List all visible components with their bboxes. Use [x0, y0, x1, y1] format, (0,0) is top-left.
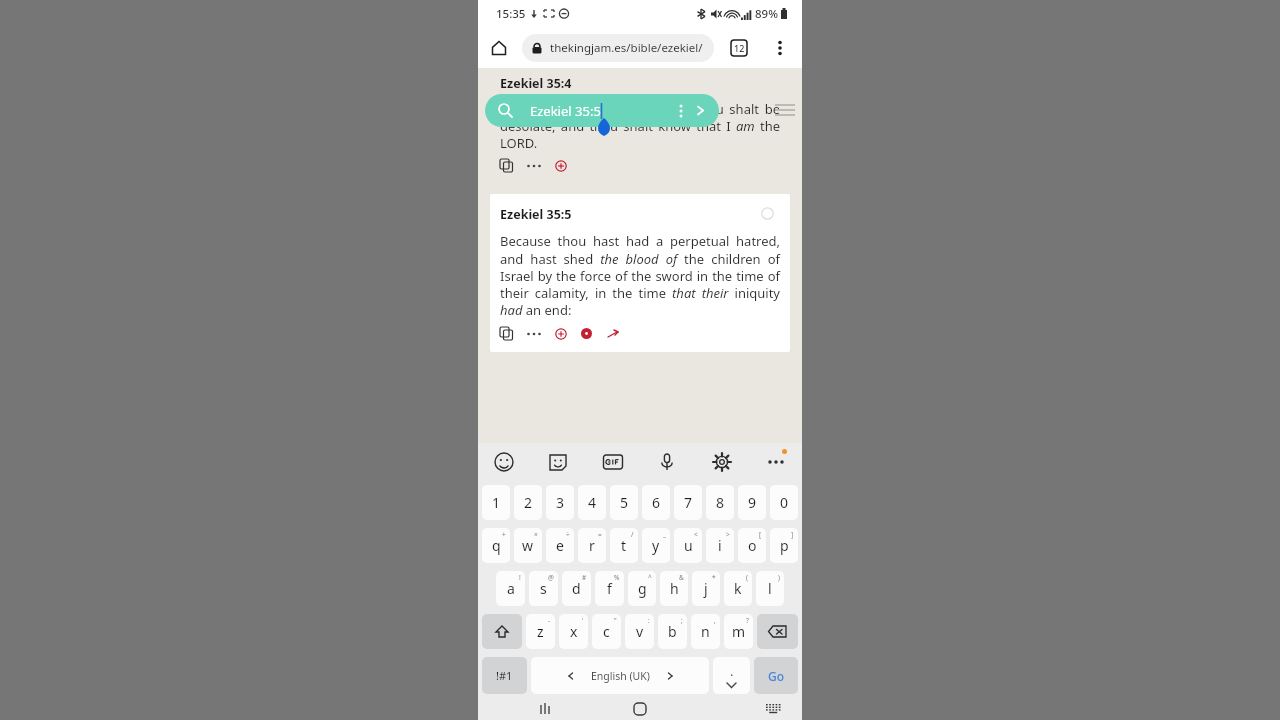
button[interactable]: r [578, 528, 606, 563]
staticText: ) [778, 573, 780, 582]
button[interactable]: Add note [555, 328, 567, 340]
button[interactable]: h [660, 571, 688, 606]
button[interactable]: Share [608, 329, 620, 339]
button[interactable]: f [595, 571, 624, 606]
button[interactable]: Search options [679, 104, 683, 118]
staticText: f [607, 579, 612, 598]
button[interactable]: Backspace [757, 614, 798, 649]
staticText: x [570, 622, 578, 641]
button[interactable]: Ezekiel 35:5 [485, 94, 719, 127]
staticText: + [502, 530, 506, 539]
button[interactable]: GIF [603, 452, 623, 472]
button[interactable]: 8 [706, 485, 734, 520]
staticText: k [734, 579, 742, 598]
staticText: English (UK) [591, 669, 650, 683]
staticText: & [679, 573, 684, 582]
staticText: a [507, 579, 515, 598]
button[interactable]: w [514, 528, 542, 563]
button[interactable]: u [674, 528, 702, 563]
button[interactable]: v [625, 614, 654, 649]
button[interactable]: Settings [712, 452, 732, 472]
button[interactable]: 2 [514, 485, 542, 520]
button[interactable]: Highlight [581, 328, 592, 339]
button[interactable]: More [766, 452, 786, 472]
staticText: Ezekiel 35:5 [500, 206, 572, 223]
staticText: q [492, 536, 501, 555]
button[interactable]: k [724, 571, 752, 606]
button[interactable]: i [706, 528, 734, 563]
staticText: w [522, 536, 534, 555]
button[interactable]: s [529, 571, 558, 606]
button[interactable]: x [559, 614, 588, 649]
button[interactable]: z [526, 614, 555, 649]
button[interactable]: 3 [546, 485, 574, 520]
staticText: 5 [620, 493, 629, 512]
other: Home [633, 702, 647, 716]
button[interactable]: Copy [500, 327, 513, 340]
button[interactable]: 4 [578, 485, 606, 520]
button[interactable]: thekingjam.es/bible/ezekiel/35 [522, 34, 714, 62]
button[interactable]: y [642, 528, 670, 563]
button[interactable]: 6 [642, 485, 670, 520]
button[interactable]: Add note [555, 160, 567, 172]
button[interactable]: Stickers [548, 452, 568, 472]
button[interactable]: 7 [674, 485, 702, 520]
staticText: 15:35 [496, 6, 526, 22]
staticText: > [726, 530, 730, 539]
button[interactable]: 1 [482, 485, 510, 520]
button[interactable]: t [610, 528, 638, 563]
button[interactable]: q [482, 528, 510, 563]
button[interactable]: m [724, 614, 753, 649]
button[interactable]: p [770, 528, 798, 563]
button[interactable]: 5 [610, 485, 638, 520]
staticText: 6 [652, 493, 661, 512]
staticText: thekingjam.es/bible/ezekiel/35 [550, 40, 704, 56]
staticText: / [631, 530, 634, 539]
staticText: * [712, 573, 716, 582]
button[interactable]: Shift [482, 614, 522, 649]
staticText: !#1 [496, 668, 513, 683]
staticText: j [704, 579, 708, 598]
button[interactable]: c [592, 614, 621, 649]
staticText: ] [791, 530, 794, 539]
staticText: u [684, 536, 693, 555]
button[interactable]: Voice input [657, 452, 677, 472]
button[interactable]: Emoji [494, 452, 514, 472]
staticText: c [603, 622, 610, 641]
staticText: y [652, 536, 660, 555]
staticText: " [614, 616, 617, 625]
button[interactable]: More [527, 164, 541, 168]
button[interactable]: Ezekiel 35:5 [490, 194, 790, 352]
staticText: 89% [755, 6, 778, 22]
staticText: _ [663, 530, 666, 539]
button[interactable]: Home [484, 33, 514, 63]
button[interactable]: !#1 [482, 657, 527, 694]
button[interactable]: More [527, 332, 541, 336]
staticText: ! [519, 573, 521, 582]
button[interactable]: More options [766, 34, 794, 62]
staticText: Ezekiel 35:4 [500, 75, 572, 92]
button[interactable]: 0 [770, 485, 798, 520]
button[interactable]: n [691, 614, 720, 649]
staticText: @ [548, 573, 554, 582]
button[interactable]: j [692, 571, 720, 606]
staticText: : [648, 616, 650, 625]
button[interactable]: d [562, 571, 591, 606]
staticText: Ezekiel 35:5 [530, 102, 601, 120]
button[interactable]: Next result [695, 105, 706, 116]
button[interactable]: o [738, 528, 766, 563]
button[interactable]: e [546, 528, 574, 563]
button[interactable]: Period [713, 657, 750, 694]
button[interactable]: a [496, 571, 525, 606]
staticText: z [537, 622, 544, 641]
button[interactable]: English (UK) [531, 657, 709, 694]
button[interactable]: Copy [500, 159, 513, 172]
staticText: v [636, 622, 644, 641]
button[interactable]: 9 [738, 485, 766, 520]
staticText: e [556, 536, 564, 555]
button[interactable]: Tabs [725, 34, 753, 62]
button[interactable]: Go [754, 657, 798, 694]
button[interactable]: g [628, 571, 656, 606]
button[interactable]: b [658, 614, 687, 649]
button[interactable]: l [756, 571, 784, 606]
